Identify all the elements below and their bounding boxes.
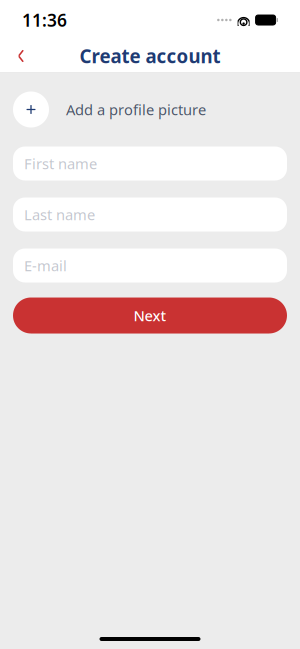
button[interactable]: Add a profile picture <box>0 91 300 127</box>
staticText: Add a profile picture <box>66 100 206 119</box>
staticText: 11:36 <box>22 8 67 31</box>
button[interactable]: Next <box>13 297 287 333</box>
staticText: Last name <box>24 205 95 224</box>
staticText: Create account <box>79 44 220 68</box>
staticText: E-mail <box>24 256 67 275</box>
staticText: First name <box>24 154 97 173</box>
staticText: Next <box>133 306 166 325</box>
button[interactable]: Back <box>6 40 36 72</box>
